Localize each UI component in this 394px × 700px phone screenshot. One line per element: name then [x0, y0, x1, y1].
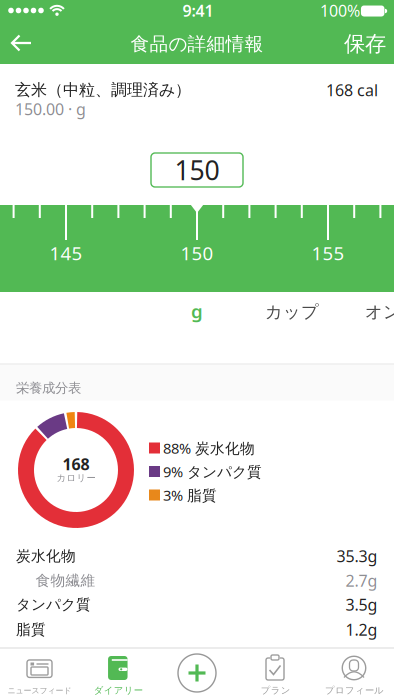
staticText: カップ — [265, 301, 319, 323]
button[interactable]: オンス — [359, 296, 394, 328]
button[interactable]: 保存 — [336, 24, 394, 64]
staticText: タンパク質 — [16, 595, 91, 613]
button[interactable]: Back — [4, 26, 40, 60]
button[interactable]: g — [169, 295, 225, 327]
staticText: 168 — [62, 453, 89, 475]
staticText: 9:41 — [182, 0, 213, 21]
staticText: ダイアリー — [94, 685, 143, 696]
staticText: g — [191, 299, 203, 323]
staticText: 保存 — [344, 31, 386, 57]
staticText: カロリー — [56, 472, 95, 484]
button[interactable]: カップ — [259, 296, 325, 328]
staticText: 炭水化物 — [16, 547, 76, 565]
staticText: オンス — [365, 301, 394, 323]
staticText: 100% — [320, 0, 360, 21]
staticText: 145 — [49, 241, 82, 265]
staticText: 150 — [180, 241, 213, 265]
staticText: 9% タンパク質 — [163, 462, 262, 481]
staticText: 168 cal — [326, 79, 378, 101]
staticText: 食物繊維 — [35, 571, 95, 589]
staticText: プロフィール — [325, 685, 384, 696]
button[interactable]: ダイアリー — [0, 0, 394, 700]
staticText: 150.00 · g — [15, 98, 86, 120]
staticText: 栄養成分表 — [16, 380, 81, 396]
staticText: 脂質 — [16, 620, 46, 638]
staticText: 3% 脂質 — [163, 485, 217, 505]
staticText: 150 — [174, 152, 219, 188]
staticText: 88% 炭水化物 — [163, 438, 255, 458]
button[interactable]: プラン — [0, 0, 394, 700]
button[interactable]: ニュースフィード — [0, 0, 394, 700]
staticText: 食品の詳細情報 — [130, 32, 263, 55]
staticText: 玄米（中粒、調理済み） — [15, 80, 191, 100]
staticText: 1.2g — [345, 619, 377, 640]
button[interactable]: 追加 — [0, 0, 394, 700]
staticText: プラン — [261, 685, 291, 696]
button[interactable]: Amount — [151, 153, 243, 187]
staticText: 35.3g — [336, 545, 377, 567]
button[interactable]: プロフィール — [0, 0, 394, 700]
staticText: 2.7g — [345, 570, 377, 591]
staticText: ニュースフィード — [7, 686, 71, 695]
staticText: 3.5g — [345, 594, 377, 615]
staticText: 155 — [311, 241, 344, 265]
